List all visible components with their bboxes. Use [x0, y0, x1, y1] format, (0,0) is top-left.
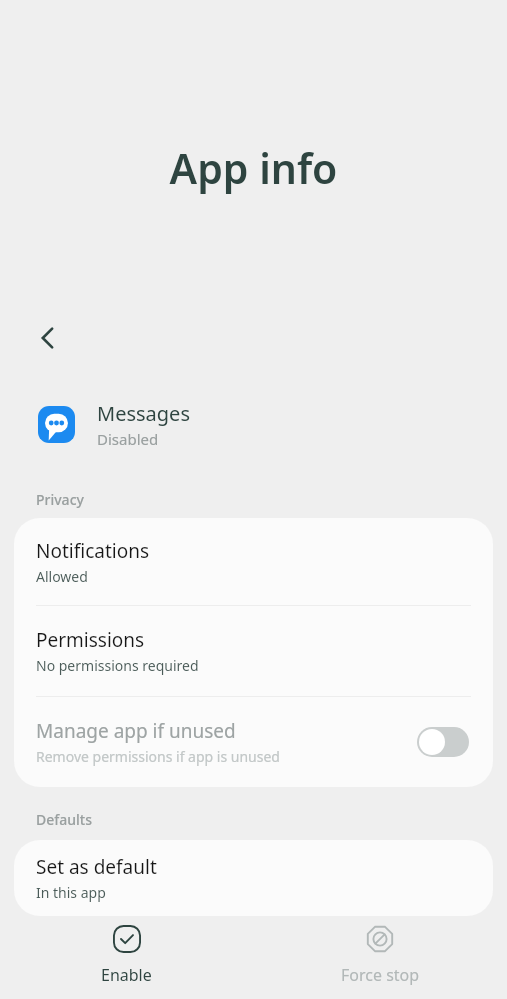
button[interactable]: Manage app if unused toggle — [417, 727, 469, 757]
staticText: No permissions required — [36, 656, 199, 675]
button[interactable]: Enable — [0, 920, 253, 990]
staticText: Enable — [101, 964, 152, 986]
button[interactable]: Permissions — [14, 606, 493, 696]
button[interactable]: Force stop — [253, 920, 507, 990]
button[interactable]: Messages — [38, 400, 190, 449]
button[interactable]: Set as default — [14, 840, 493, 916]
staticText: Allowed — [36, 567, 88, 586]
button[interactable]: Notifications — [14, 518, 493, 605]
staticText: Manage app if unused — [36, 718, 236, 744]
staticText: Defaults — [36, 810, 92, 829]
staticText: Privacy — [36, 490, 84, 509]
button[interactable]: Back — [26, 316, 70, 360]
staticText: Set as default — [36, 854, 157, 880]
staticText: Force stop — [341, 964, 420, 986]
staticText: In this app — [36, 883, 106, 902]
staticText: Permissions — [36, 627, 145, 653]
staticText: Notifications — [36, 538, 150, 564]
staticText: Remove permissions if app is unused — [36, 747, 280, 766]
staticText: App info — [0, 140, 507, 196]
button[interactable]: Manage app if unused — [14, 697, 493, 787]
staticText: Messages — [97, 400, 190, 427]
staticText: Disabled — [97, 429, 159, 449]
